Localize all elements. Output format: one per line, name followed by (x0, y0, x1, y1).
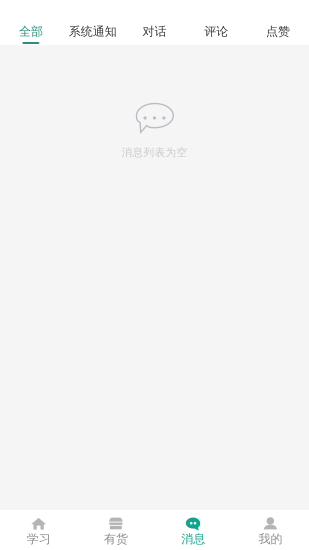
button[interactable]: 对话 (124, 0, 185, 45)
button[interactable]: 评论 (185, 0, 247, 45)
button[interactable]: 学习 (0, 509, 77, 550)
staticText: 我的 (258, 532, 282, 546)
staticText: 全部 (19, 24, 43, 39)
staticText: 点赞 (266, 24, 290, 39)
staticText: 学习 (27, 532, 51, 546)
button[interactable]: 全部 (0, 0, 62, 45)
button[interactable]: 消息 (154, 509, 232, 550)
button[interactable]: 有货 (77, 509, 154, 550)
button[interactable]: 点赞 (247, 0, 309, 45)
staticText: 消息列表为空 (121, 146, 187, 159)
staticText: 系统通知 (69, 24, 117, 39)
button[interactable]: 我的 (232, 509, 309, 550)
staticText: 评论 (204, 24, 228, 39)
staticText: 有货 (104, 532, 128, 546)
staticText: 消息 (181, 532, 205, 546)
button[interactable]: 系统通知 (62, 0, 124, 45)
staticText: 对话 (142, 24, 166, 39)
